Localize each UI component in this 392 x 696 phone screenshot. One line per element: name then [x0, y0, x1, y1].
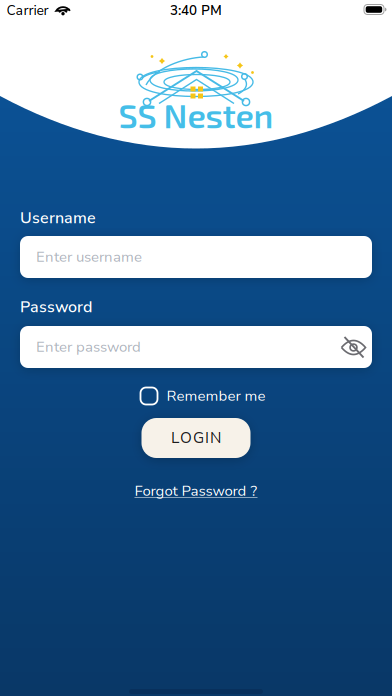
staticText: Username — [20, 207, 96, 229]
staticText: 3:40 PM — [170, 1, 222, 20]
staticText: LOGIN — [171, 427, 221, 448]
button[interactable]: Enter password — [20, 326, 372, 368]
staticText: SS Nesten — [118, 95, 273, 135]
staticText: Enter password — [36, 337, 141, 357]
button[interactable]: Show password — [338, 333, 369, 362]
staticText: Password — [20, 296, 92, 318]
button[interactable]: Remember me — [140, 386, 265, 406]
staticText: Carrier — [6, 1, 48, 20]
staticText: Forgot Password ? — [134, 481, 257, 501]
button[interactable]: LOGIN — [141, 418, 250, 458]
button[interactable]: Enter username — [20, 236, 372, 278]
staticText: Enter username — [36, 247, 142, 267]
button[interactable]: Forgot Password ? — [134, 481, 257, 501]
staticText: Remember me — [166, 386, 265, 406]
